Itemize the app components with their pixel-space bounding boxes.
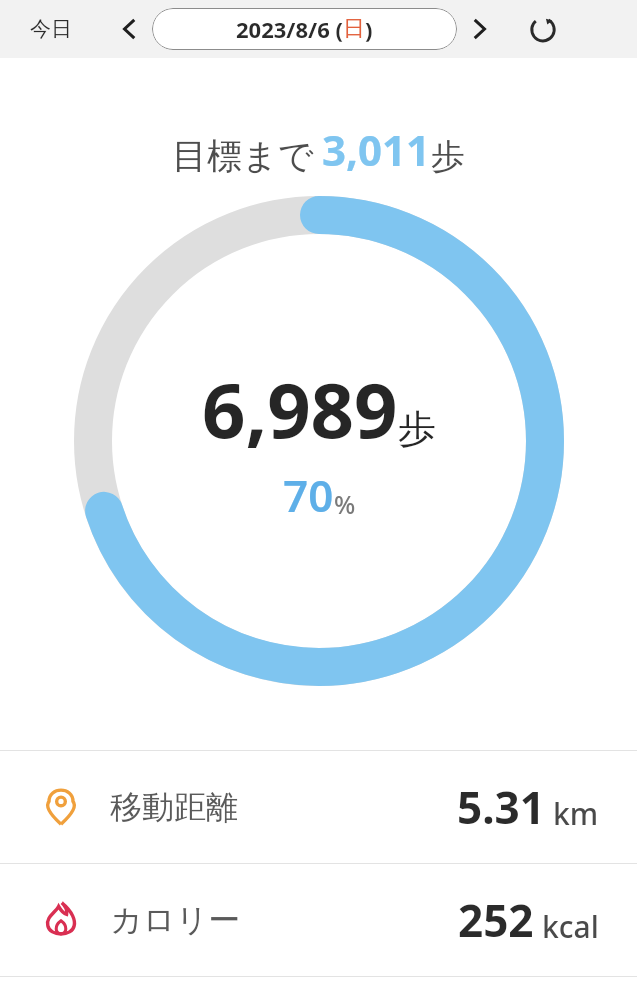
staticText: 70	[283, 465, 334, 525]
staticText: 日	[343, 15, 365, 43]
staticText: 歩	[398, 405, 436, 453]
staticText: 目標まで	[172, 134, 314, 178]
staticText: 252	[458, 890, 534, 950]
staticText: 2023/8/6 (	[236, 14, 343, 44]
button[interactable]: Previous day	[110, 10, 148, 48]
button[interactable]: カロリー	[0, 864, 637, 976]
staticText: )	[365, 14, 373, 44]
button[interactable]: 移動距離	[0, 751, 637, 863]
staticText: 移動距離	[110, 787, 238, 827]
staticText: %	[334, 487, 356, 521]
button[interactable]: Refresh	[523, 9, 563, 49]
button[interactable]: Next day	[461, 10, 499, 48]
staticText: 3,011	[322, 121, 431, 178]
staticText: kcal	[542, 906, 599, 947]
staticText: 6,989	[202, 357, 398, 461]
staticText: 5.31	[457, 777, 545, 837]
staticText: 今日	[30, 16, 72, 42]
staticText: カロリー	[110, 900, 241, 940]
button[interactable]: 2023/8/6 (	[152, 8, 457, 50]
staticText: km	[553, 793, 599, 834]
staticText: 歩	[431, 135, 465, 178]
button[interactable]: 今日	[26, 10, 76, 48]
